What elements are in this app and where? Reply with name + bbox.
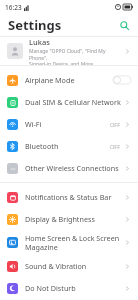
staticText: Home Screen & Lock Screen Magazine <box>25 233 124 252</box>
staticText: Notifications & Status Bar <box>25 192 124 202</box>
button[interactable]: Search <box>116 17 132 33</box>
button[interactable]: Display & Brightness <box>0 208 138 230</box>
button[interactable]: Other Wireless Connections <box>0 157 138 179</box>
staticText: Settings <box>8 16 62 34</box>
staticText: Display & Brightness <box>25 214 124 224</box>
staticText: OFF <box>110 121 121 128</box>
staticText: Wi-Fi <box>25 119 110 129</box>
button[interactable]: Bluetooth <box>0 135 138 157</box>
button[interactable]: Dual SIM & Cellular Network <box>0 91 138 113</box>
button[interactable]: Sound & Vibration <box>0 255 138 277</box>
button[interactable]: Wi-Fi <box>0 113 138 135</box>
button[interactable]: Do Not Disturb <box>0 277 138 299</box>
staticText: 16:23 <box>5 3 22 12</box>
staticText: Bluetooth <box>25 141 110 151</box>
staticText: Manage "OPPO Cloud", "Find My Phone", Si… <box>29 48 121 65</box>
button[interactable]: Airplane Mode toggle <box>113 75 131 85</box>
button[interactable]: Lukas <box>0 37 138 65</box>
staticText: Dual SIM & Cellular Network <box>25 97 124 107</box>
staticText: Airplane Mode <box>25 75 113 85</box>
button[interactable]: Notifications & Status Bar <box>0 186 138 208</box>
staticText: Do Not Disturb <box>25 283 124 293</box>
staticText: Other Wireless Connections <box>25 163 124 173</box>
staticText: Sound & Vibration <box>25 261 124 271</box>
staticText: Lukas <box>29 37 50 47</box>
staticText: OFF <box>110 143 121 150</box>
button[interactable]: Home Screen & Lock Screen Magazine <box>0 230 138 255</box>
button[interactable]: Airplane Mode <box>0 69 138 91</box>
